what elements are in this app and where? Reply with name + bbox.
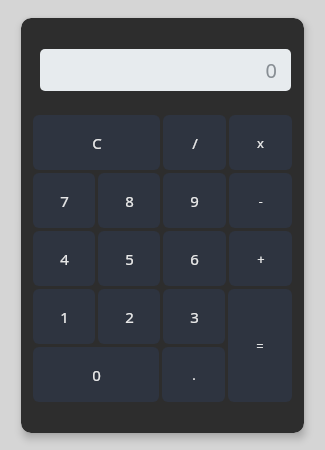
button[interactable]: - xyxy=(229,173,292,228)
staticText: 0 xyxy=(265,57,277,84)
button[interactable]: + xyxy=(229,231,292,286)
button[interactable]: . xyxy=(162,347,225,402)
staticText: 0 xyxy=(92,365,101,385)
button[interactable]: 6 xyxy=(163,231,226,286)
staticText: 9 xyxy=(190,191,199,211)
staticText: C xyxy=(92,133,102,153)
button[interactable]: 0 xyxy=(33,347,159,402)
button[interactable]: 7 xyxy=(33,173,95,228)
button[interactable]: 3 xyxy=(163,289,225,344)
button[interactable]: / xyxy=(163,115,226,170)
button[interactable]: = xyxy=(228,289,292,402)
staticText: 7 xyxy=(60,191,69,211)
button[interactable]: 4 xyxy=(33,231,95,286)
staticText: 4 xyxy=(60,249,69,269)
staticText: 1 xyxy=(60,307,69,327)
staticText: + xyxy=(257,250,265,268)
button[interactable]: 1 xyxy=(33,289,95,344)
staticText: 3 xyxy=(190,307,199,327)
staticText: - xyxy=(258,192,263,210)
staticText: 8 xyxy=(125,191,134,211)
button[interactable]: 9 xyxy=(163,173,226,228)
staticText: / xyxy=(192,133,198,153)
staticText: 5 xyxy=(125,249,134,269)
button[interactable]: C xyxy=(33,115,160,170)
staticText: 2 xyxy=(125,307,134,327)
staticText: x xyxy=(257,134,264,152)
button[interactable]: x xyxy=(229,115,292,170)
staticText: . xyxy=(192,366,196,384)
button[interactable]: 5 xyxy=(98,231,160,286)
staticText: = xyxy=(256,337,264,355)
button[interactable]: 8 xyxy=(98,173,160,228)
staticText: 6 xyxy=(190,249,199,269)
button[interactable]: 2 xyxy=(98,289,160,344)
